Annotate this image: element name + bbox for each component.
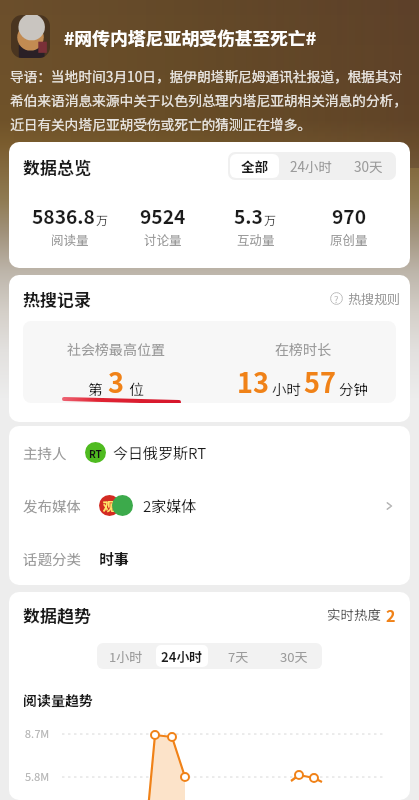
staticText: 9524 bbox=[140, 202, 186, 230]
staticText: 话题分类 bbox=[23, 548, 81, 569]
staticText: 数据趋势 bbox=[23, 602, 91, 627]
staticText: 第 bbox=[88, 378, 103, 399]
staticText: 在榜时长 bbox=[275, 339, 331, 359]
staticText: 位 bbox=[129, 378, 144, 399]
staticText: 互动量 bbox=[237, 230, 275, 248]
staticText: 社会榜最高位置 bbox=[67, 339, 165, 359]
staticText: #网传内塔尼亚胡受伤甚至死亡# bbox=[64, 24, 317, 50]
button[interactable]: 发布媒体 bbox=[9, 479, 410, 532]
staticText: 实时热度 bbox=[327, 604, 381, 624]
staticText: 万 bbox=[96, 211, 109, 228]
staticText: 全部 bbox=[241, 156, 268, 176]
staticText: 30天 bbox=[354, 156, 383, 176]
button[interactable]: 热搜规则 bbox=[330, 289, 401, 308]
staticText: 今日俄罗斯RT bbox=[113, 442, 207, 464]
button[interactable]: 主持人 bbox=[9, 426, 410, 479]
staticText: 主持人 bbox=[23, 442, 67, 463]
staticText: 热搜规则 bbox=[348, 289, 401, 308]
staticText: 13 bbox=[237, 362, 269, 401]
staticText: 阅读量趋势 bbox=[23, 690, 93, 710]
staticText: 导语：当地时间3月10日，据伊朗塔斯尼姆通讯社报道，根据其对希伯来语消息来源中关… bbox=[10, 66, 415, 134]
staticText: 时事 bbox=[99, 548, 130, 570]
staticText: 3 bbox=[108, 362, 124, 401]
staticText: 24小时 bbox=[161, 647, 203, 666]
staticText: 1小时 bbox=[109, 647, 143, 666]
staticText: 发布媒体 bbox=[23, 495, 81, 516]
staticText: ? bbox=[334, 292, 339, 305]
staticText: 2家媒体 bbox=[143, 495, 197, 517]
staticText: 阅读量 bbox=[51, 230, 89, 248]
staticText: 970 bbox=[332, 202, 366, 230]
button[interactable]: 1小时 bbox=[99, 645, 152, 667]
button[interactable]: 30天 bbox=[343, 154, 394, 178]
staticText: 万 bbox=[264, 211, 277, 228]
staticText: 讨论量 bbox=[144, 230, 182, 248]
staticText: 数据总览 bbox=[23, 154, 91, 179]
staticText: 小时 bbox=[272, 378, 301, 399]
button[interactable]: 7天 bbox=[212, 645, 264, 667]
button[interactable]: 全部 bbox=[230, 154, 279, 178]
staticText: 30天 bbox=[280, 647, 308, 666]
staticText: 7天 bbox=[228, 647, 249, 666]
button[interactable]: 话题分类 bbox=[9, 532, 410, 585]
staticText: 8.7M bbox=[25, 725, 50, 741]
staticText: 5836.8 bbox=[32, 202, 95, 230]
staticText: 分钟 bbox=[339, 378, 368, 399]
staticText: 5.3 bbox=[234, 202, 263, 230]
staticText: 57 bbox=[304, 362, 336, 401]
staticText: 2 bbox=[386, 603, 396, 626]
staticText: 原创量 bbox=[330, 230, 368, 248]
button[interactable]: 30天 bbox=[268, 645, 320, 667]
staticText: 5.8M bbox=[25, 768, 50, 784]
staticText: 观 bbox=[103, 497, 116, 514]
button[interactable]: 24小时 bbox=[156, 645, 208, 667]
staticText: RT bbox=[89, 446, 102, 460]
staticText: 24小时 bbox=[290, 156, 332, 176]
staticText: 热搜记录 bbox=[23, 286, 91, 311]
button[interactable]: 24小时 bbox=[279, 154, 343, 178]
